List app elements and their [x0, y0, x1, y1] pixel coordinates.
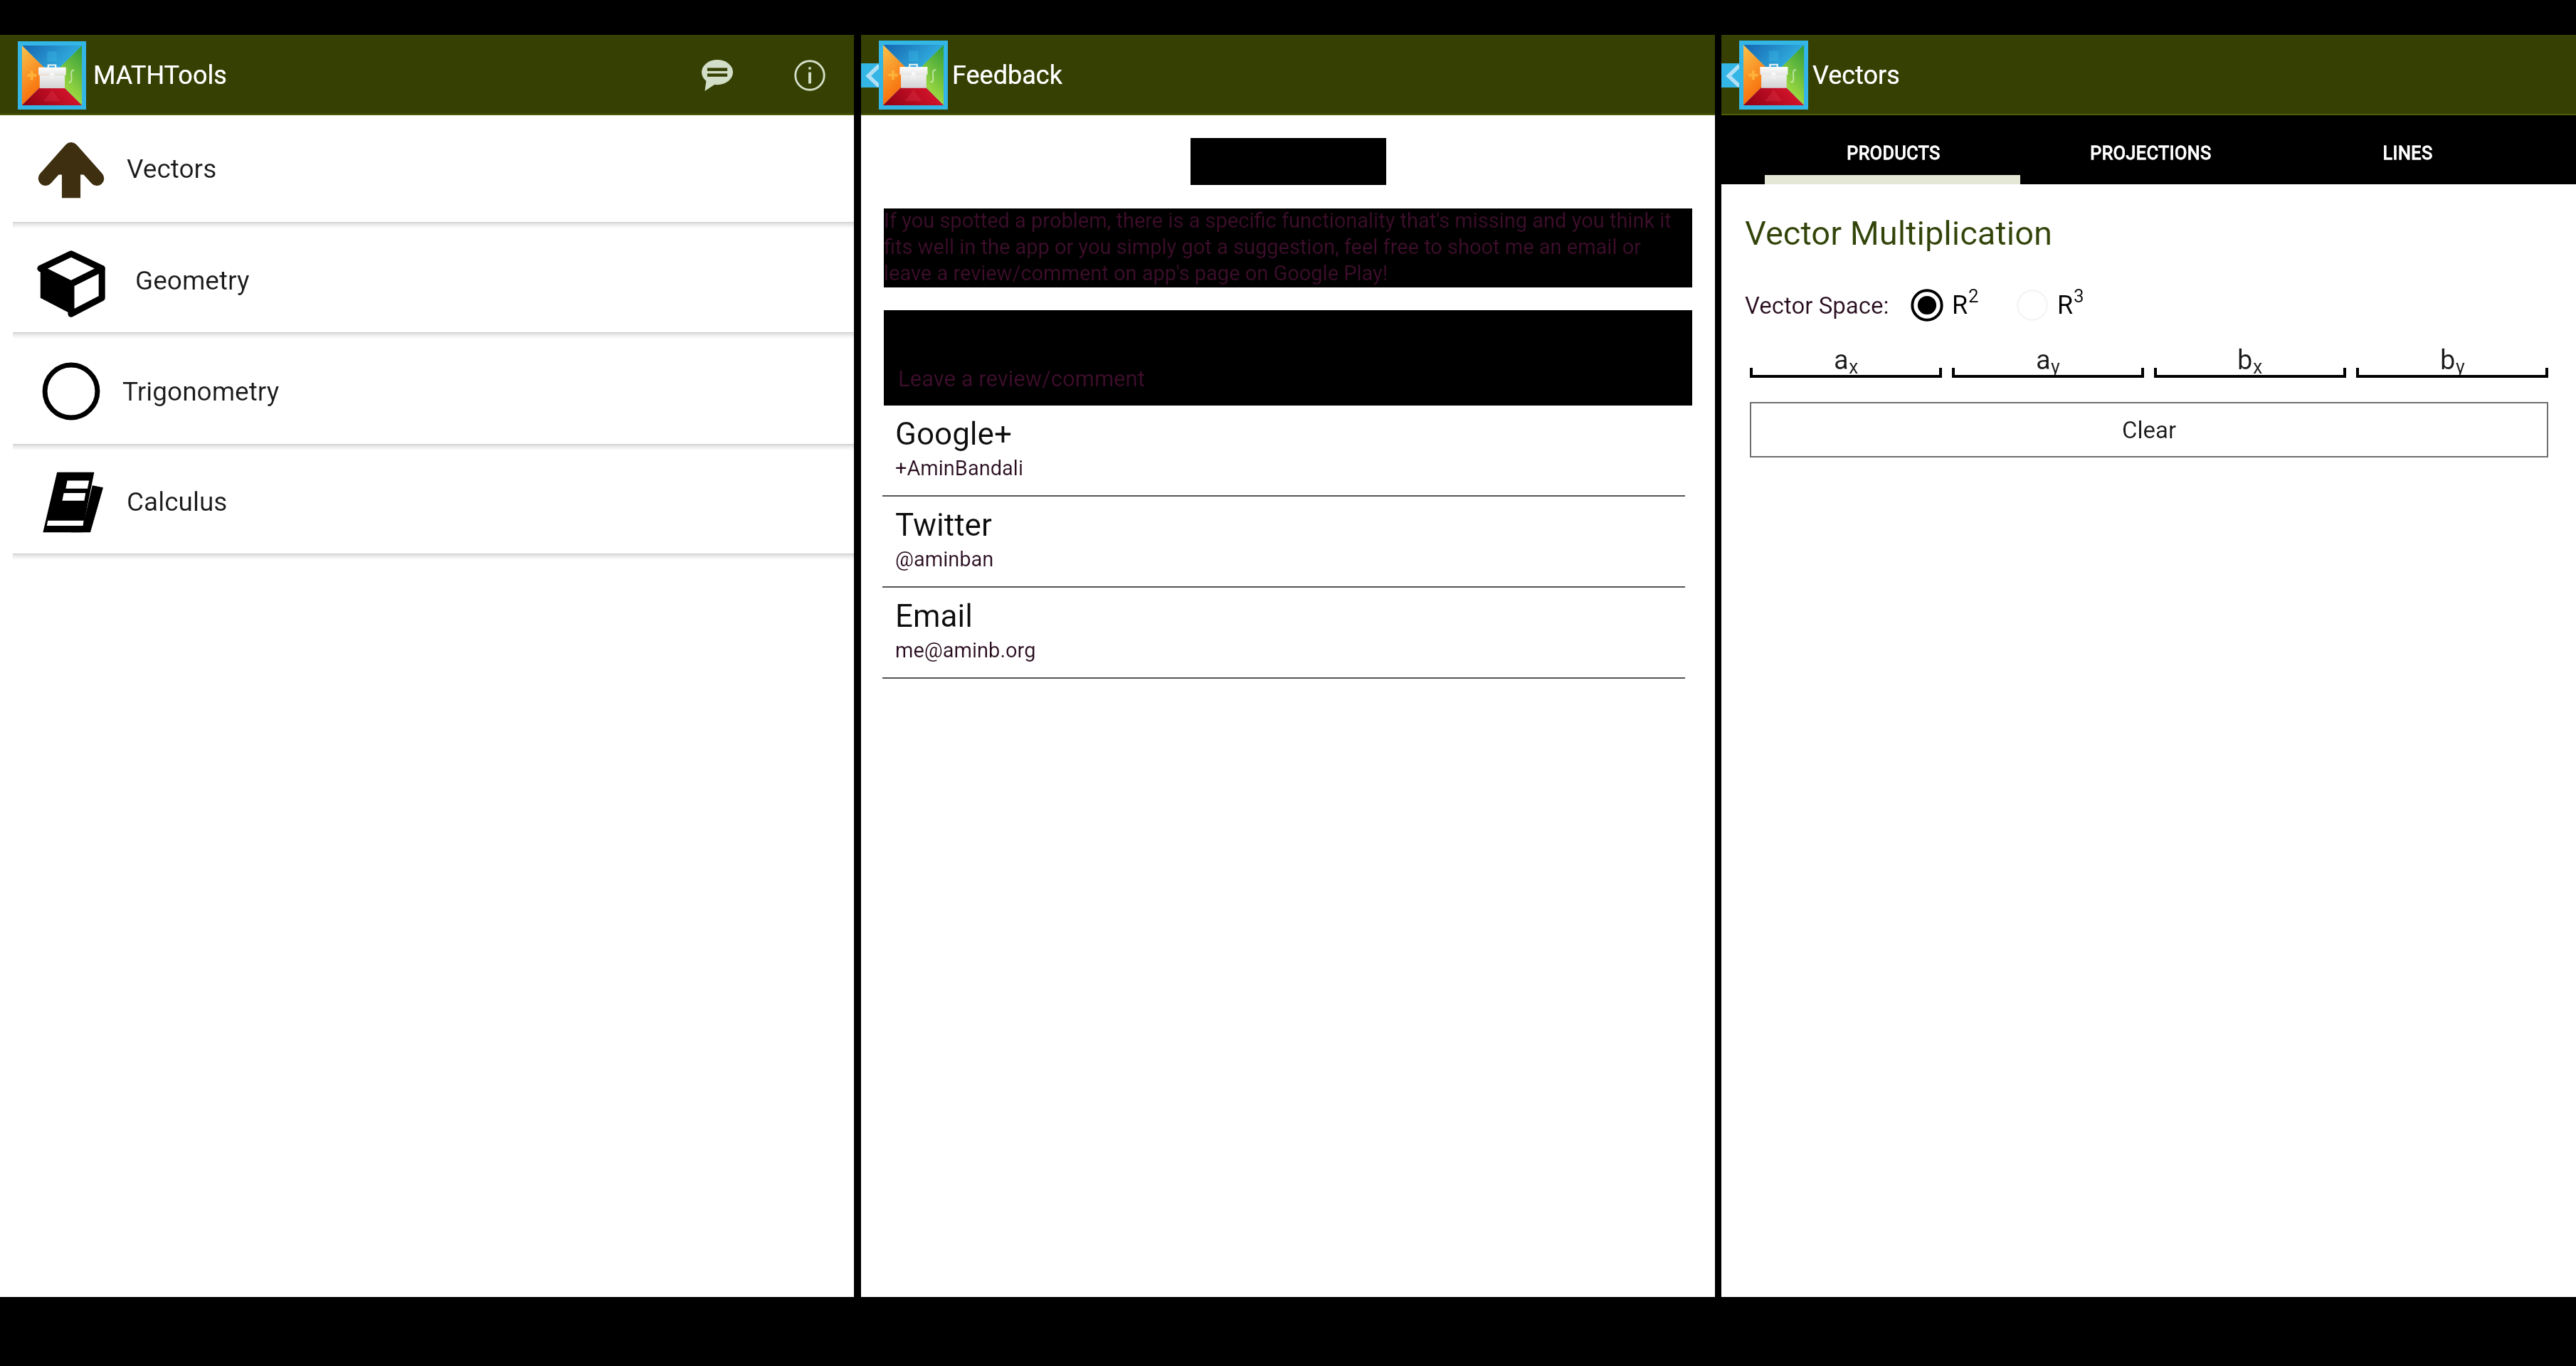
staticText: y [2051, 356, 2060, 378]
button[interactable]: LINES [2279, 131, 2536, 175]
button[interactable]: Twitter [861, 497, 1715, 588]
staticText: Calculus [127, 487, 228, 517]
button[interactable]: Email [861, 588, 1715, 679]
button[interactable]: Vectors [0, 115, 854, 222]
staticText: Trigonometry [122, 376, 280, 407]
staticText: Geometry [135, 265, 250, 296]
staticText: me@aminb.org [895, 638, 1036, 662]
button[interactable]: R squared [1906, 285, 1948, 326]
staticText: Vectors [127, 154, 217, 184]
button[interactable]: PROJECTIONS [2022, 131, 2279, 175]
button[interactable]: Calculus [0, 450, 854, 554]
staticText: y [2456, 356, 2465, 378]
staticText: MATHTools [93, 60, 227, 90]
staticText: Vector Space: [1745, 292, 1889, 319]
staticText: +AminBandali [895, 456, 1023, 480]
staticText: b [2237, 344, 2253, 376]
button[interactable]: Google+ [861, 406, 1715, 497]
staticText: LINES [2382, 143, 2433, 164]
button[interactable]: PRODUCTS [1765, 131, 2022, 175]
staticText: b [2440, 344, 2456, 376]
button[interactable]: Navigate up [1721, 35, 1808, 115]
staticText: a [1834, 344, 1849, 376]
staticText: 2 [1968, 285, 1979, 307]
staticText: Clear [2122, 416, 2177, 444]
button[interactable]: Feedback [678, 36, 756, 115]
button[interactable]: Trigonometry [0, 339, 854, 444]
staticText: R [1952, 290, 1968, 320]
staticText: x [2253, 356, 2263, 378]
button[interactable]: About [771, 36, 849, 115]
staticText: Feedback [952, 60, 1062, 90]
button[interactable]: Leave a review/comment [884, 310, 1692, 406]
staticText: PRODUCTS [1847, 143, 1941, 164]
staticText: @aminban [895, 547, 994, 571]
button[interactable]: Navigate up [861, 35, 948, 115]
staticText: Email [895, 598, 973, 635]
staticText: PROJECTIONS [2090, 143, 2212, 164]
staticText: a [2036, 344, 2051, 376]
staticText: Leave a review/comment [898, 366, 1145, 391]
button[interactable]: Geometry [0, 228, 854, 332]
staticText: R [2057, 290, 2074, 320]
staticText: Vector Multiplication [1745, 213, 2052, 253]
staticText: 3 [2074, 285, 2084, 307]
staticText: x [1849, 356, 1859, 378]
staticText: Twitter [895, 507, 992, 544]
staticText: If you spotted a problem, there is a spe… [884, 208, 1692, 285]
staticText: Vectors [1812, 60, 1900, 90]
staticText: Google+ [895, 415, 1012, 452]
button[interactable]: Clear [1750, 402, 2548, 457]
